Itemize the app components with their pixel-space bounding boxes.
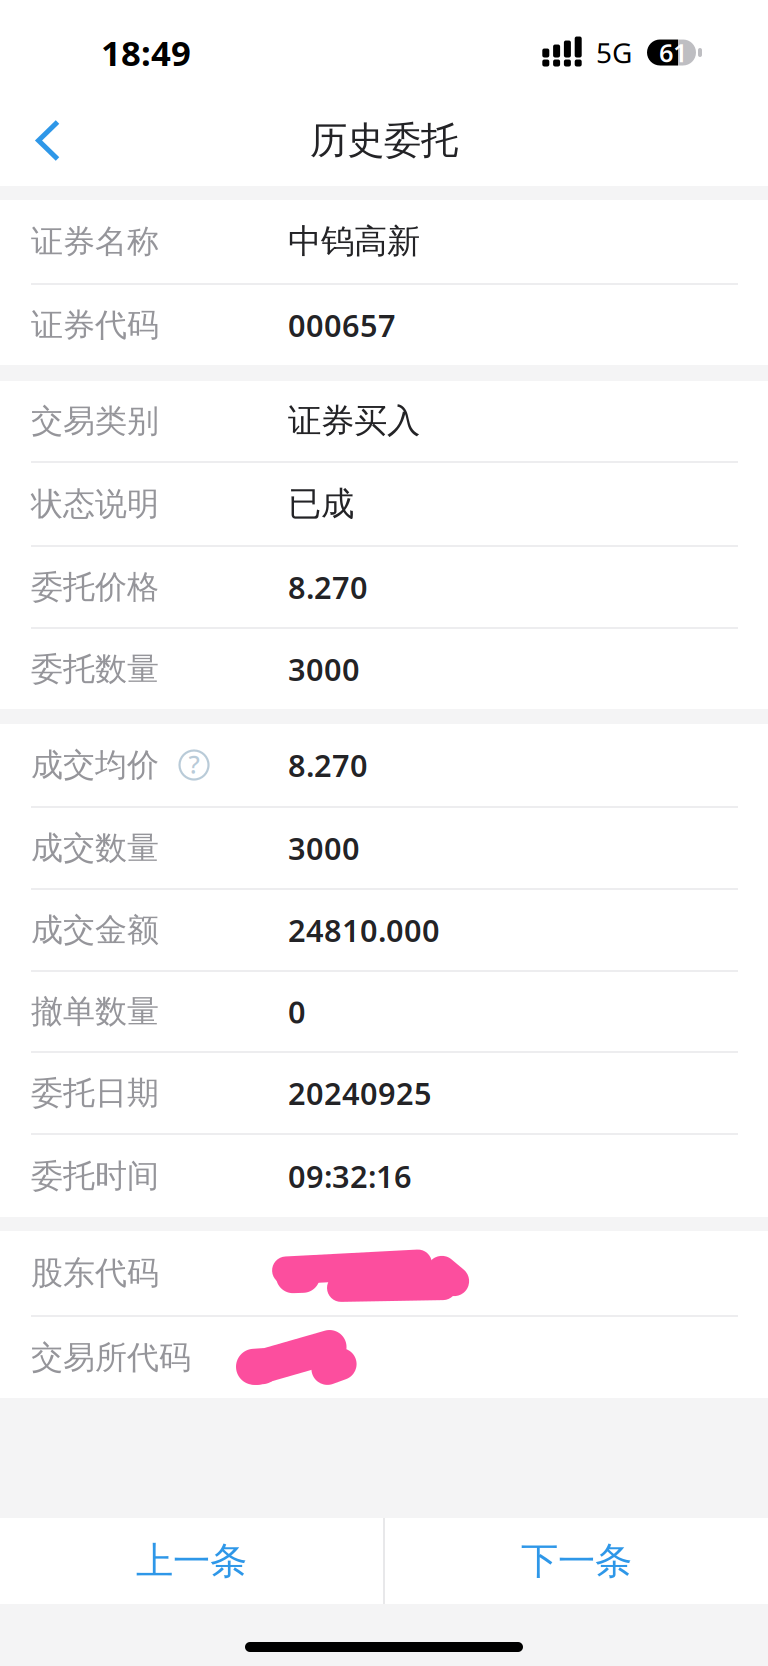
staticText: 3000 xyxy=(288,828,360,868)
staticText: 成交均价 xyxy=(31,745,159,785)
button[interactable]: What is average fill price xyxy=(177,748,211,782)
button[interactable]: 下一条 xyxy=(385,1518,768,1604)
button[interactable]: 上一条 xyxy=(0,1518,383,1604)
staticText: 股东代码 xyxy=(31,1253,159,1293)
staticText: 已成 xyxy=(288,483,354,524)
staticText: 委托时间 xyxy=(31,1156,159,1196)
staticText: 18:49 xyxy=(101,29,191,75)
staticText: 3000 xyxy=(288,649,360,689)
staticText: 8.270 xyxy=(288,745,368,785)
staticText: 中钨高新 xyxy=(288,221,420,262)
staticText: 委托价格 xyxy=(31,567,159,607)
staticText: 下一条 xyxy=(521,1538,632,1584)
staticText: 24810.000 xyxy=(288,910,440,950)
staticText: 0 xyxy=(288,991,306,1032)
staticText: 成交数量 xyxy=(31,828,159,868)
staticText: 交易所代码 xyxy=(31,1338,191,1377)
staticText: ? xyxy=(188,747,199,781)
staticText: 证券买入 xyxy=(288,400,420,441)
staticText: 09:32:16 xyxy=(288,1156,412,1196)
staticText: 证券代码 xyxy=(31,305,159,345)
staticText: 委托日期 xyxy=(31,1073,159,1113)
staticText: 成交金额 xyxy=(31,910,159,950)
staticText: 20240925 xyxy=(288,1073,432,1113)
staticText: 状态说明 xyxy=(31,484,159,524)
staticText: 000657 xyxy=(288,305,396,345)
staticText: 撤单数量 xyxy=(31,992,159,1031)
staticText: 上一条 xyxy=(136,1538,247,1584)
staticText: 委托数量 xyxy=(31,649,159,689)
staticText: 证券名称 xyxy=(31,222,159,261)
button[interactable]: Back xyxy=(0,95,90,186)
staticText: 交易类别 xyxy=(31,401,159,441)
staticText: 61 xyxy=(659,36,687,69)
staticText: 历史委托 xyxy=(310,118,458,163)
staticText: 5G xyxy=(596,34,632,71)
staticText: 8.270 xyxy=(288,567,368,607)
